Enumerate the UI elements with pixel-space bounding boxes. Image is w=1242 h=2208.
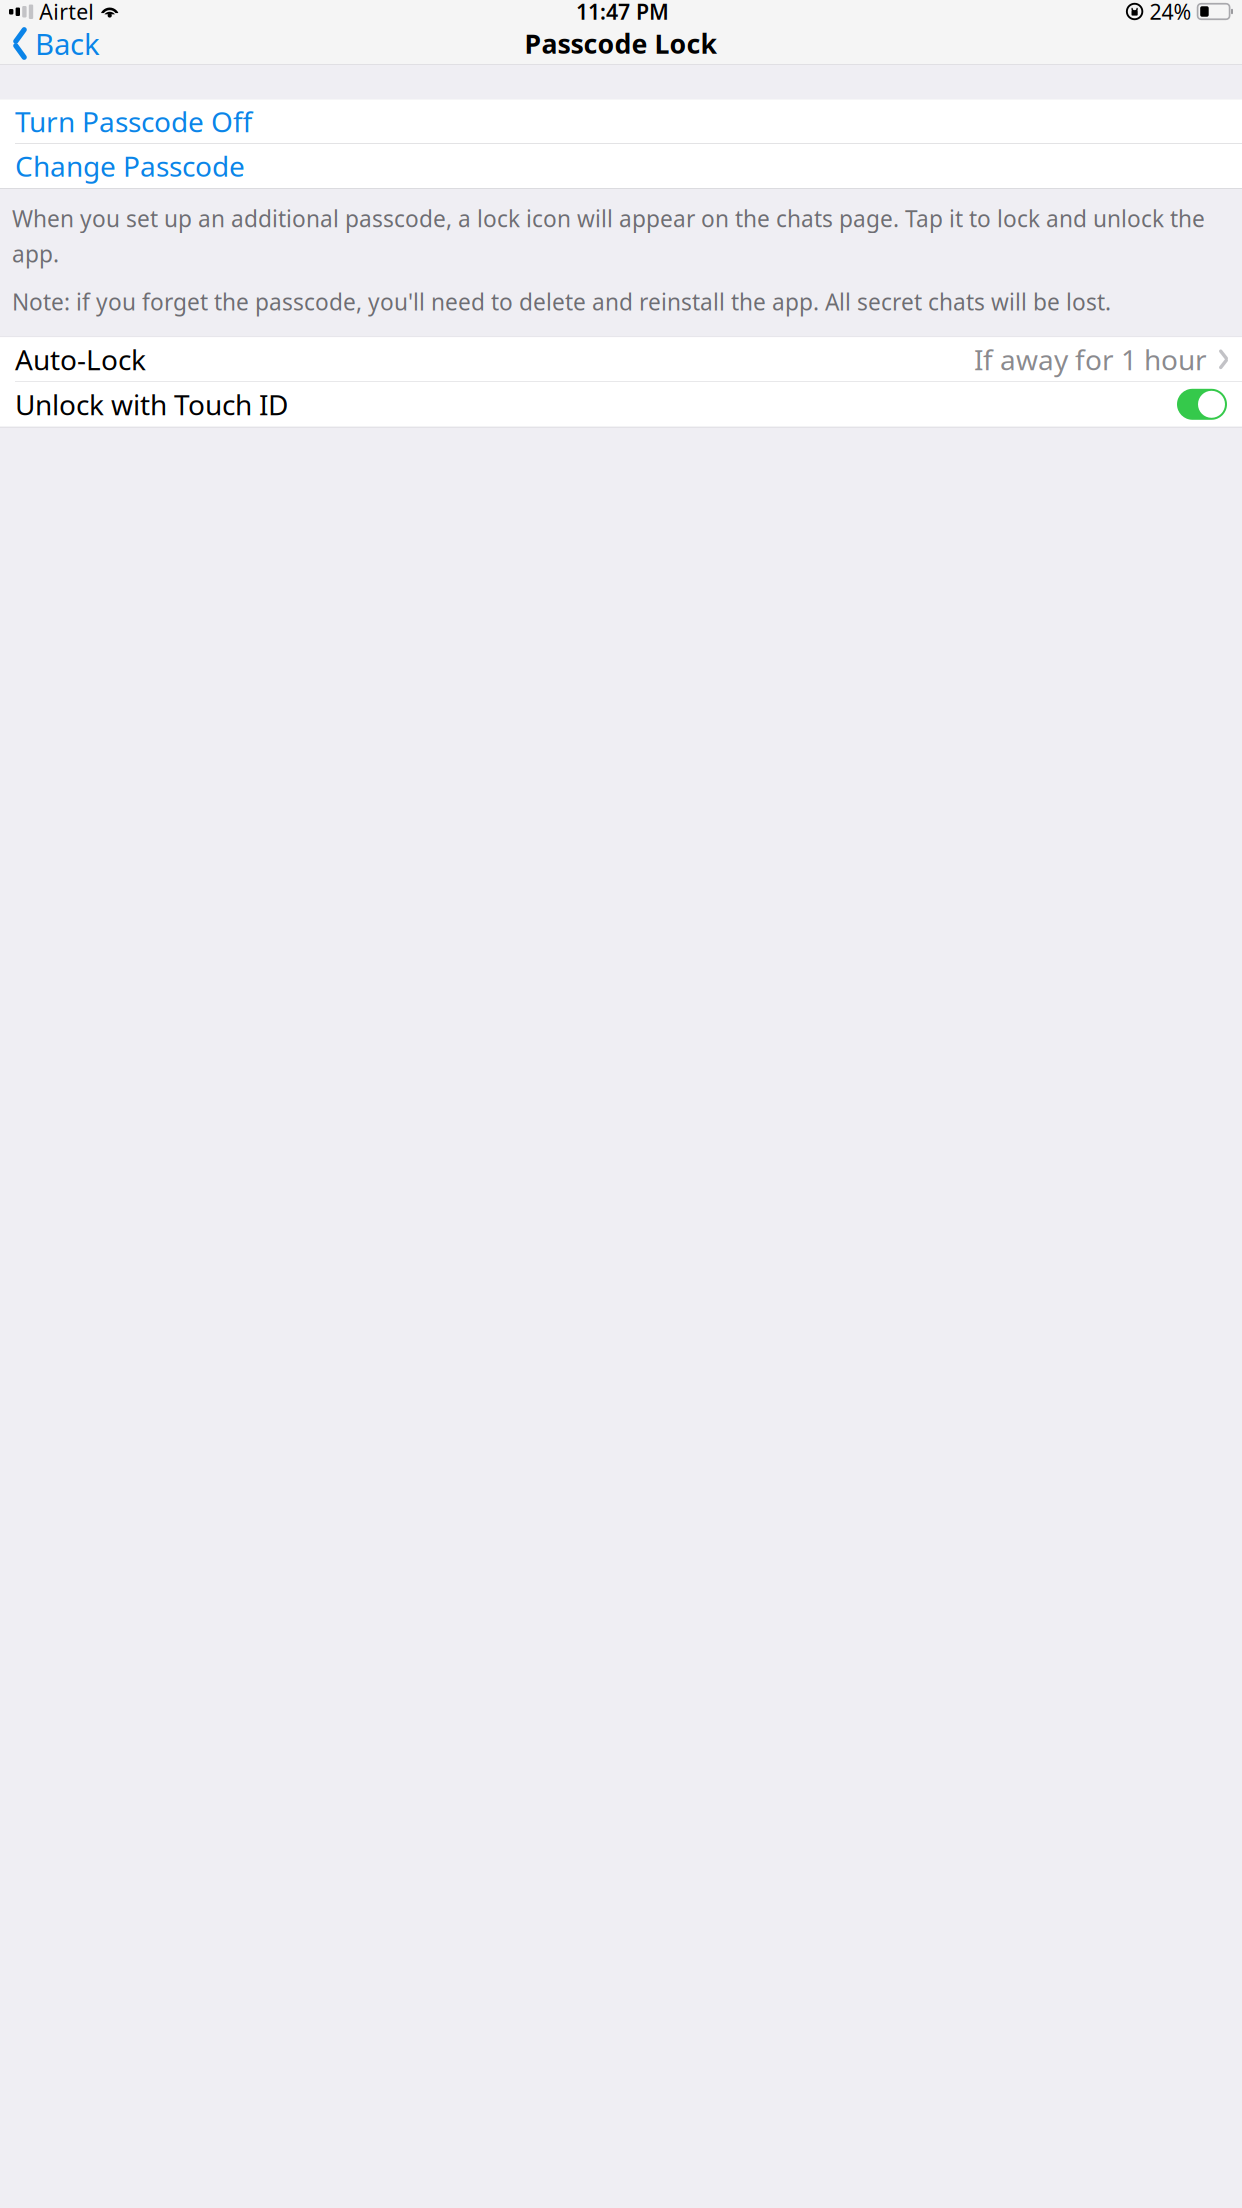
button[interactable]: Turn Passcode Off: [0, 99, 1242, 143]
staticText: When you set up an additional passcode, …: [12, 203, 1205, 269]
staticText: Airtel: [39, 0, 94, 26]
staticText: 24%: [1150, 0, 1192, 26]
staticText: Note: if you forget the passcode, you'll…: [12, 287, 1111, 317]
staticText: Change Passcode: [15, 147, 245, 185]
staticText: Auto-Lock: [15, 341, 146, 378]
button[interactable]: Unlock with Touch ID: [0, 382, 1242, 427]
staticText: Turn Passcode Off: [15, 103, 252, 140]
staticText: Passcode Lock: [524, 26, 717, 61]
staticText: Back: [35, 24, 100, 63]
button[interactable]: Back: [6, 20, 100, 67]
staticText: If away for 1 hour: [974, 341, 1207, 378]
button[interactable]: Auto-Lock: [0, 337, 1242, 381]
button[interactable]: Change Passcode: [0, 144, 1242, 188]
staticText: Unlock with Touch ID: [15, 386, 288, 423]
staticText: 11:47 PM: [576, 0, 669, 26]
